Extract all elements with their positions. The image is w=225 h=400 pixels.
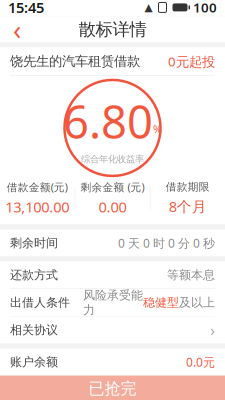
staticText: 0元起投 <box>168 53 215 70</box>
staticText: 及以上 <box>179 295 215 310</box>
staticText: 100 <box>193 0 217 16</box>
button[interactable]: 相关协议 <box>0 317 225 344</box>
staticText: 0.0元 <box>186 354 215 370</box>
staticText: 账户余额 <box>10 355 58 369</box>
staticText: 饶先生的汽车租赁借款 <box>10 53 140 70</box>
staticText: 已抢完 <box>88 379 136 398</box>
staticText: 散标详情 <box>78 19 146 40</box>
staticText: ▲ <box>144 1 152 13</box>
staticText: 13,100.00 <box>5 197 69 217</box>
staticText: 综合年化收益率 <box>81 153 144 165</box>
staticText: 还款方式 <box>10 268 58 282</box>
staticText: 稳健型 <box>143 295 179 310</box>
staticText: › <box>210 319 215 341</box>
staticText: 等额本息 <box>167 268 215 282</box>
staticText: 剩余金额 (元) <box>80 180 144 194</box>
staticText: % <box>153 122 162 136</box>
staticText: 借款金额(元) <box>7 180 68 194</box>
staticText: 相关协议 <box>10 323 58 337</box>
button[interactable]: 已抢完 <box>0 376 225 400</box>
staticText: 6.80 <box>63 91 153 151</box>
staticText: ‹ <box>13 12 21 47</box>
staticText: 风险承受能力 <box>83 288 143 317</box>
staticText: 0 天 0 时 0 分 0 秒 <box>118 235 215 251</box>
staticText: 剩余时间 <box>10 236 58 250</box>
staticText: 15:45 <box>8 0 44 17</box>
staticText: 借款期限 <box>166 180 210 194</box>
staticText: 出借人条件 <box>10 295 70 310</box>
button[interactable]: 返回 <box>0 16 34 42</box>
staticText: 0.00 <box>98 197 126 217</box>
staticText: 8个月 <box>169 197 207 216</box>
